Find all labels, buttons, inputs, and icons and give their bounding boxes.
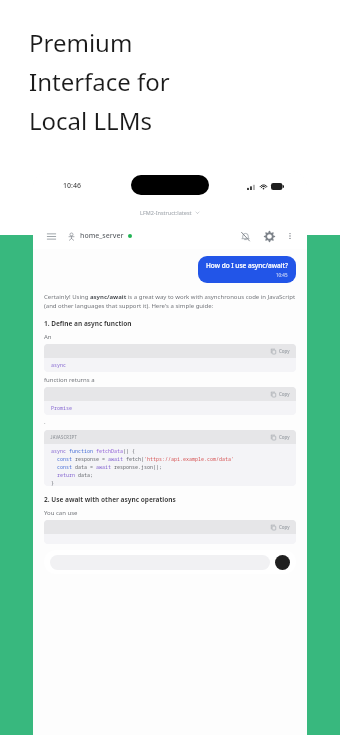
staticText: home_server xyxy=(80,231,124,241)
staticText: async xyxy=(51,362,67,369)
staticText: return data; xyxy=(51,472,94,479)
staticText: How do I use async/await? xyxy=(206,261,288,270)
staticText: JAVASCRIPT xyxy=(50,434,77,440)
staticText: Promise xyxy=(51,405,73,412)
button[interactable]: JAVASCRIPT xyxy=(50,430,290,444)
staticText: Copy xyxy=(279,348,290,354)
staticText: } xyxy=(51,480,55,486)
button[interactable]: How do I use async/await? xyxy=(198,256,296,283)
staticText: 1. Define an async function xyxy=(44,319,132,328)
staticText: const data = await response.json(); xyxy=(51,464,163,471)
staticText: 10:46 xyxy=(63,181,81,191)
staticText: 2. Use await with other async operations xyxy=(44,495,176,504)
staticText: 10:45 xyxy=(276,272,288,278)
button[interactable]: Send message xyxy=(44,550,296,574)
button[interactable]: Copy xyxy=(50,387,290,401)
button[interactable]: Copy xyxy=(50,520,290,534)
staticText: const response = await fetch('https://ap… xyxy=(51,456,235,463)
staticText: . xyxy=(44,418,46,426)
button[interactable]: Settings xyxy=(261,228,277,244)
other: Send message xyxy=(275,555,290,570)
button[interactable]: Copy xyxy=(50,344,290,358)
staticText: LFM2-Instruct:latest xyxy=(140,209,192,216)
staticText: Copy xyxy=(279,391,290,397)
button[interactable]: home_server xyxy=(67,231,132,241)
staticText: Interface for xyxy=(29,65,170,98)
staticText: Local LLMs xyxy=(29,104,152,137)
staticText: Certainly! Using async/await is a great … xyxy=(44,293,296,310)
button[interactable]: Open navigation menu xyxy=(43,228,59,244)
button[interactable]: LFM2-Instruct:latest xyxy=(33,201,307,223)
staticText: function returns a xyxy=(44,376,95,384)
staticText: Copy xyxy=(279,434,290,440)
staticText: You can use xyxy=(44,509,78,517)
staticText: Copy xyxy=(279,524,290,530)
staticText: Premium xyxy=(29,26,133,59)
staticText: An xyxy=(44,333,52,341)
button[interactable]: More options xyxy=(283,229,297,243)
staticText: async function fetchData() { xyxy=(51,448,136,455)
button[interactable]: Mute notifications xyxy=(237,228,253,244)
